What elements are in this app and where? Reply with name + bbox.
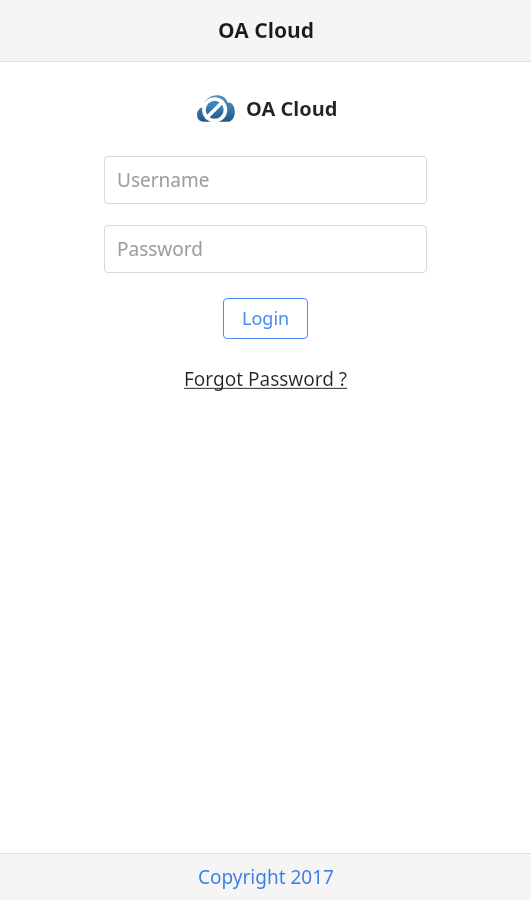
button[interactable]: Username [104,156,427,204]
staticText: Forgot Password ? [184,366,348,392]
button[interactable]: Forgot Password ? [184,366,348,392]
staticText: OA Cloud [246,95,338,122]
staticText: Username [117,167,210,193]
button[interactable]: Login [223,298,308,339]
staticText: Copyright 2017 [198,864,334,890]
staticText: Login [242,306,290,331]
button[interactable]: Password [104,225,427,273]
staticText: OA Cloud [218,16,314,45]
staticText: Password [117,236,203,262]
